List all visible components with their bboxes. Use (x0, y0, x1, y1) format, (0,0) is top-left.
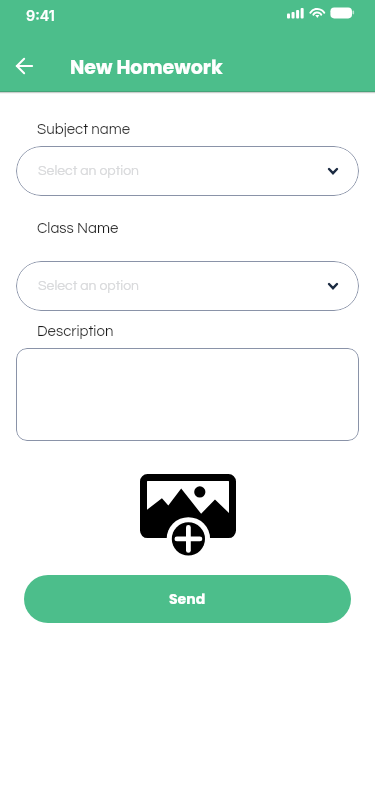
staticText: Select an option (38, 164, 139, 178)
button[interactable] (16, 348, 359, 441)
staticText: Send (169, 589, 206, 609)
button[interactable]: Back (4, 46, 44, 86)
button[interactable]: Select an option (16, 146, 359, 196)
staticText: 9:41 (26, 7, 55, 24)
staticText: Class Name (37, 221, 119, 236)
button[interactable]: Add photo (140, 474, 236, 561)
button[interactable]: Select an option (16, 261, 359, 311)
staticText: New Homework (70, 54, 223, 81)
staticText: Select an option (38, 279, 139, 293)
staticText: Description (37, 324, 114, 339)
staticText: Subject name (37, 122, 131, 137)
button[interactable]: Send (24, 575, 351, 623)
